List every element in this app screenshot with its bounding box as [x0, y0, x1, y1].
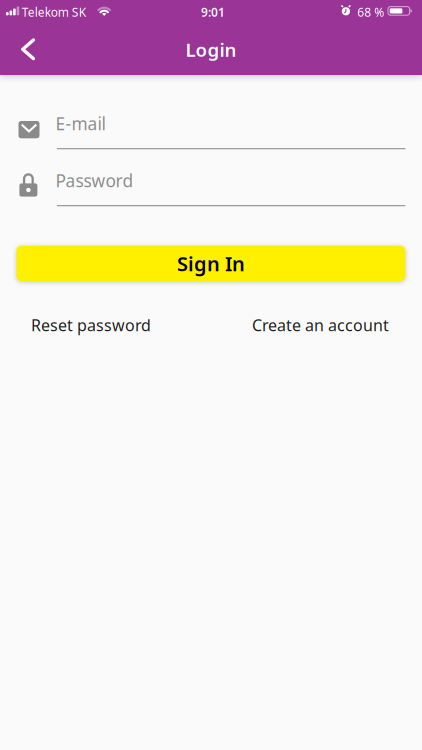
staticText: Reset password	[31, 314, 151, 336]
staticText: Create an account	[252, 314, 389, 336]
staticText: 9:01	[201, 4, 225, 20]
staticText: Login	[185, 37, 236, 62]
staticText: Sign In	[177, 250, 245, 277]
button[interactable]: Back	[0, 0, 56, 75]
button[interactable]: Create an account	[252, 314, 389, 336]
button[interactable]: Sign In	[16, 246, 405, 281]
staticText: E-mail	[55, 112, 105, 135]
staticText: 68 %	[357, 4, 384, 20]
staticText: Password	[55, 169, 133, 192]
button[interactable]: Reset password	[31, 314, 151, 336]
staticText: Telekom SK	[22, 4, 86, 20]
